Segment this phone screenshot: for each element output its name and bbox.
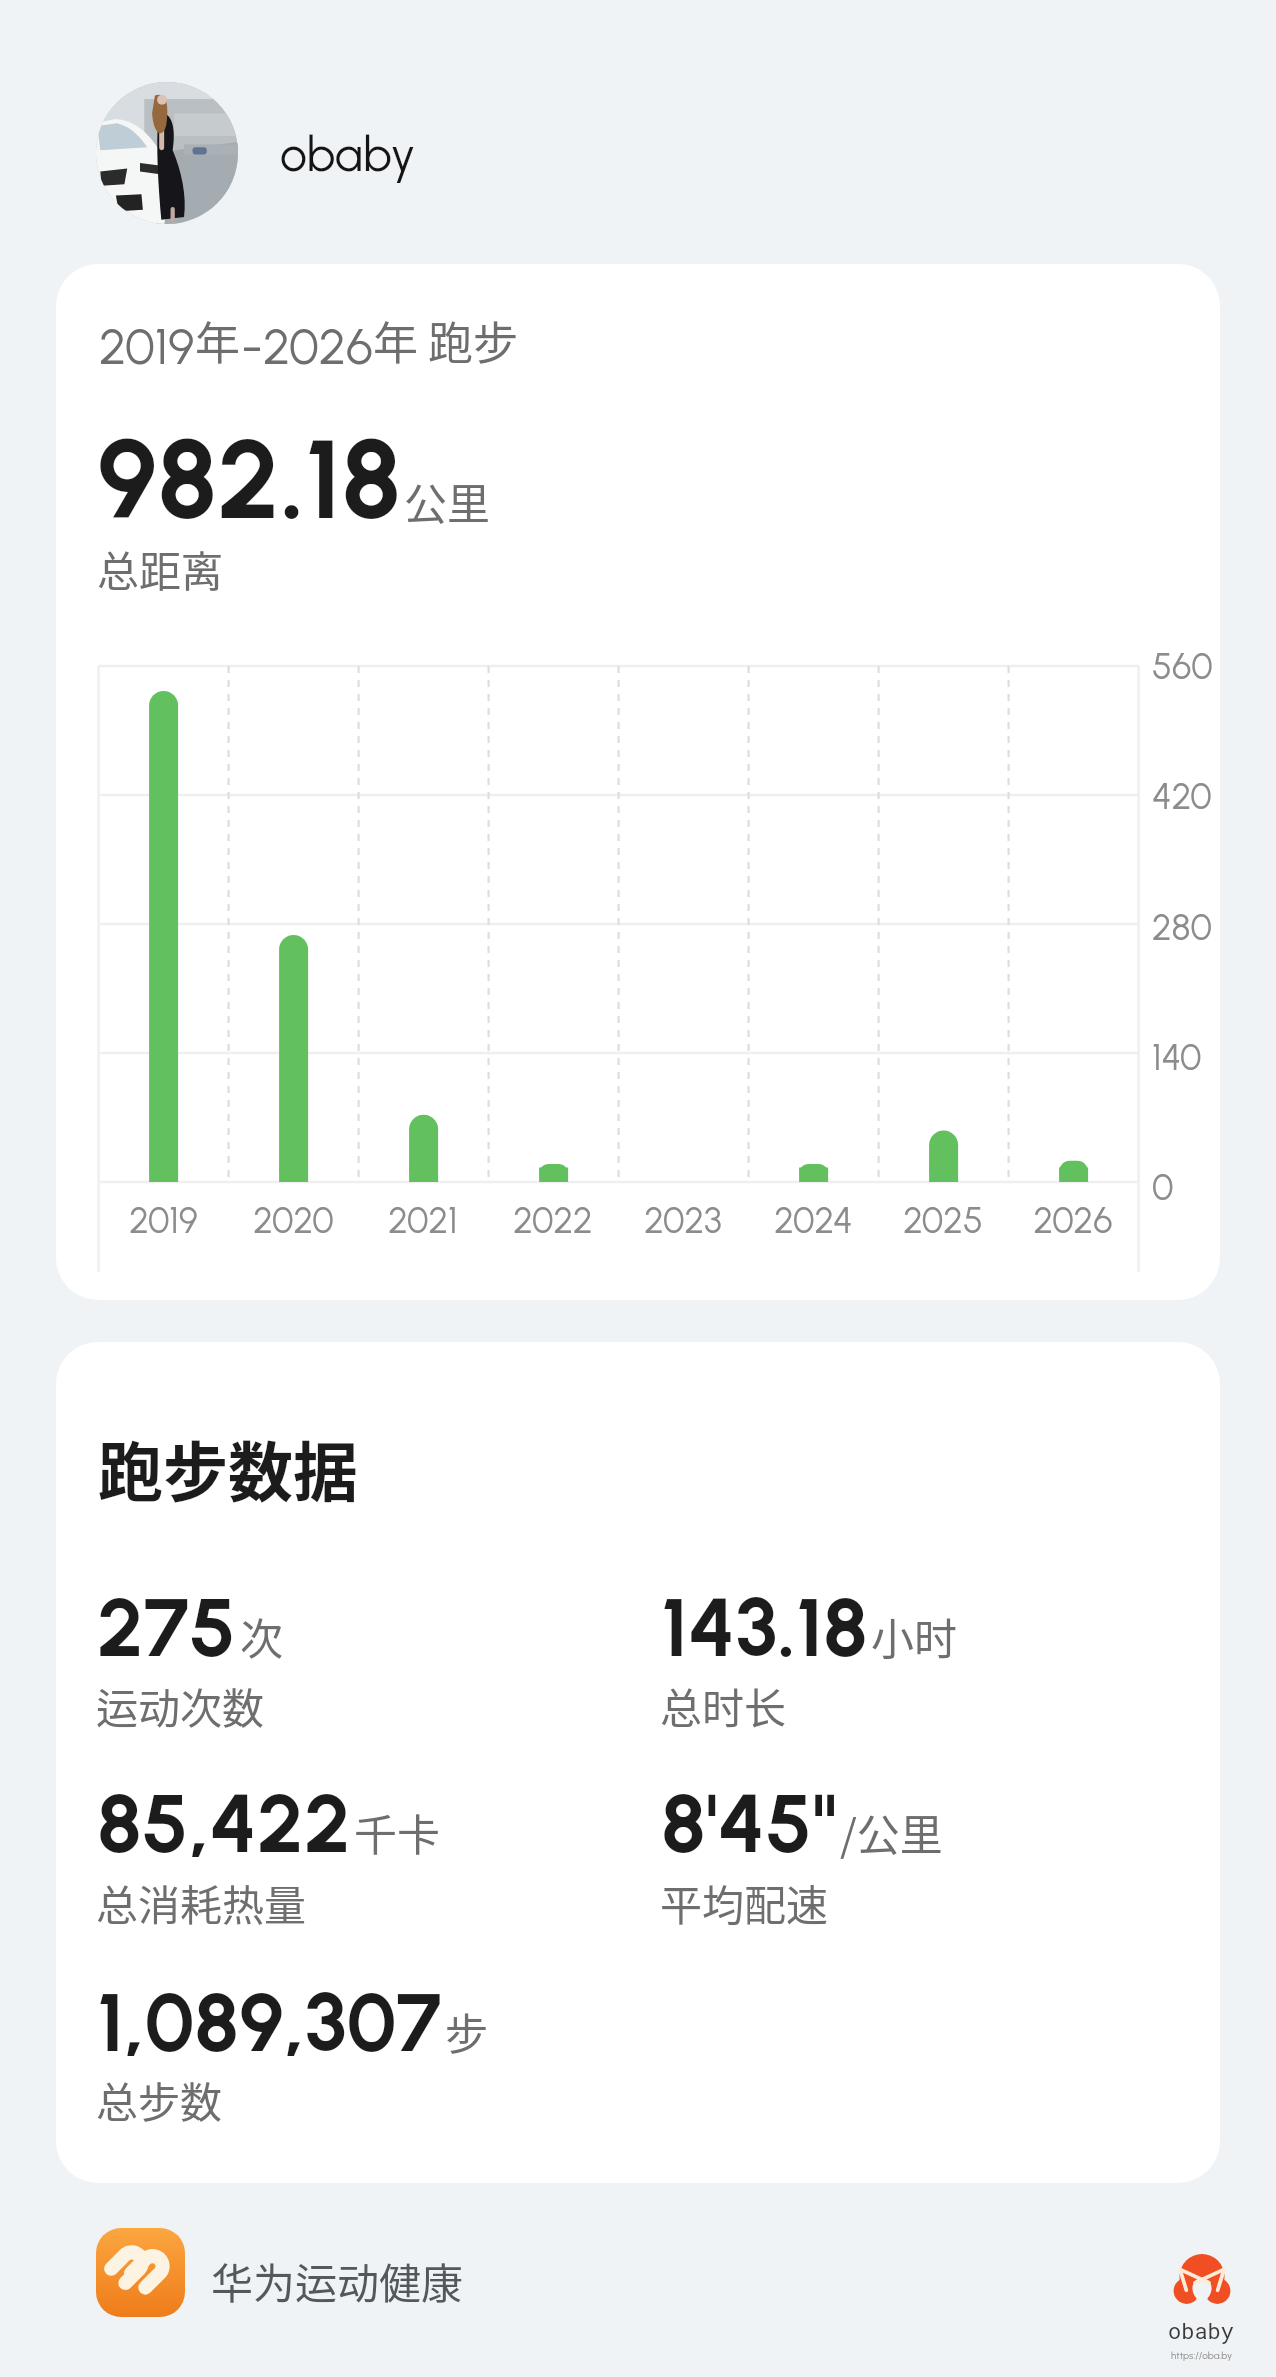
- staticText: 总距离: [97, 538, 224, 599]
- staticText: 次: [240, 1605, 283, 1667]
- staticText: 275: [97, 1578, 237, 1676]
- staticText: 420: [1152, 775, 1212, 818]
- staticText: -2026: [241, 316, 373, 376]
- staticText: 560: [1152, 645, 1213, 688]
- staticText: 8'45": [661, 1774, 837, 1872]
- staticText: 2023: [644, 1199, 722, 1242]
- other: obaby site logo: [1168, 2252, 1235, 2361]
- button[interactable]: obaby: [96, 82, 416, 224]
- staticText: 平均配速: [660, 1872, 829, 1933]
- staticText: 2022: [513, 1199, 593, 1242]
- staticText: 总时长: [660, 1675, 787, 1736]
- staticText: 2026: [1033, 1199, 1113, 1242]
- staticText: 85,422: [97, 1774, 351, 1872]
- staticText: 运动次数: [96, 1675, 265, 1736]
- staticText: 公里: [404, 470, 490, 532]
- staticText: obaby: [280, 125, 416, 183]
- staticText: 年: [195, 308, 241, 373]
- staticText: 140: [1152, 1036, 1202, 1079]
- button[interactable]: 华为运动健康: [96, 2228, 464, 2317]
- staticText: 143.18: [661, 1578, 868, 1676]
- staticText: 小时: [871, 1605, 957, 1667]
- staticText: 跑步数据: [98, 1421, 359, 1515]
- staticText: 年 跑步: [373, 308, 519, 373]
- staticText: 2025: [903, 1199, 983, 1242]
- staticText: 千卡: [354, 1801, 440, 1863]
- staticText: 1,089,307: [97, 1973, 442, 2071]
- staticText: /公里: [840, 1801, 943, 1863]
- staticText: 2024: [774, 1199, 853, 1242]
- staticText: 2019: [99, 316, 195, 376]
- staticText: 2019: [129, 1199, 198, 1242]
- staticText: 华为运动健康: [211, 2250, 464, 2311]
- staticText: 2021: [388, 1199, 458, 1242]
- staticText: https://oba.by: [1171, 2349, 1233, 2361]
- staticText: 步: [445, 2000, 488, 2062]
- staticText: 总消耗热量: [96, 1872, 307, 1933]
- staticText: obaby: [1168, 2316, 1235, 2345]
- staticText: 982.18: [97, 413, 402, 545]
- staticText: 2020: [253, 1199, 334, 1242]
- staticText: 0: [1152, 1166, 1174, 1209]
- staticText: 总步数: [96, 2069, 223, 2130]
- staticText: 280: [1152, 906, 1212, 949]
